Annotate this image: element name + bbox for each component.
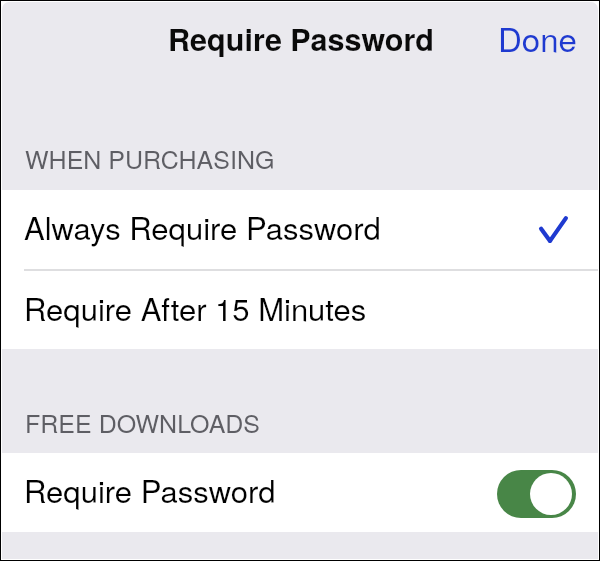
button[interactable]: Always Require Password [2,190,598,269]
other: Selected [539,216,568,243]
button[interactable]: Require After 15 Minutes [2,271,598,349]
staticText: WHEN PURCHASING [25,140,275,176]
staticText: Require After 15 Minutes [24,285,367,329]
staticText: Require Password [168,17,434,61]
staticText: FREE DOWNLOADS [25,404,261,440]
staticText: Done [498,14,577,61]
staticText: Require Password [24,467,276,511]
button[interactable]: Require Password toggle [497,470,576,518]
button[interactable]: Done [482,10,592,64]
button[interactable]: Require Password [2,453,598,532]
staticText: Always Require Password [24,204,381,248]
